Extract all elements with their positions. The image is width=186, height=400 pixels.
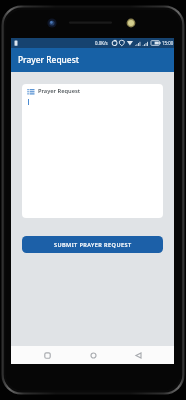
staticText: SUBMIT PRAYER REQUEST — [54, 241, 132, 249]
staticText: 0.0K/s — [95, 40, 108, 46]
button[interactable]: Home — [83, 346, 103, 364]
staticText: Prayer Request — [18, 54, 79, 65]
button[interactable]: Prayer Request — [22, 84, 163, 218]
staticText: Prayer Request — [38, 87, 81, 95]
staticText: 15:00 — [162, 40, 174, 46]
button[interactable]: Back — [128, 346, 148, 364]
button[interactable]: Recent apps — [37, 346, 57, 364]
button[interactable]: SUBMIT PRAYER REQUEST — [22, 236, 163, 253]
